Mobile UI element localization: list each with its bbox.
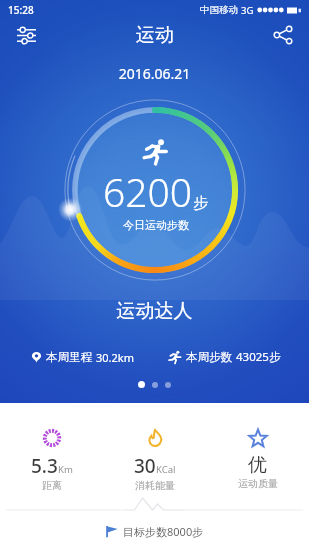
staticText: 今日运动步数 — [123, 218, 189, 232]
staticText: 30 — [134, 453, 156, 479]
staticText: 运动达人 — [0, 299, 309, 323]
staticText: 6200 — [103, 165, 193, 218]
staticText: 30.2km — [96, 350, 134, 365]
staticText: 中国移动 — [200, 4, 238, 16]
staticText: 运动 — [136, 23, 174, 47]
staticText: 2016.06.21 — [0, 64, 309, 83]
staticText: 优 — [248, 453, 267, 477]
staticText: 3G — [241, 4, 254, 17]
staticText: 消耗能量 — [135, 479, 175, 492]
staticText: 目标步数8000步 — [123, 524, 204, 539]
staticText: 5.3 — [31, 453, 58, 479]
staticText: KCal — [156, 463, 176, 476]
button[interactable]: 目标步数8000步 — [0, 513, 309, 549]
staticText: 本周步数 — [186, 350, 232, 364]
button[interactable]: Page 1 — [138, 381, 145, 388]
button[interactable]: Settings — [6, 15, 46, 55]
button[interactable]: Share — [263, 15, 303, 55]
staticText: Km — [58, 463, 73, 476]
button[interactable]: Page 2 — [152, 382, 158, 388]
staticText: 距离 — [42, 479, 62, 492]
staticText: 运动质量 — [238, 477, 278, 490]
button[interactable]: 优 — [206, 403, 309, 495]
button[interactable]: 30 — [103, 403, 206, 495]
staticText: 15:28 — [8, 3, 34, 17]
button[interactable]: 5.3 — [0, 403, 103, 495]
staticText: 本周里程 — [46, 350, 92, 364]
staticText: 43025步 — [236, 349, 281, 365]
button[interactable]: Page 3 — [165, 382, 171, 388]
staticText: 步 — [193, 194, 208, 213]
